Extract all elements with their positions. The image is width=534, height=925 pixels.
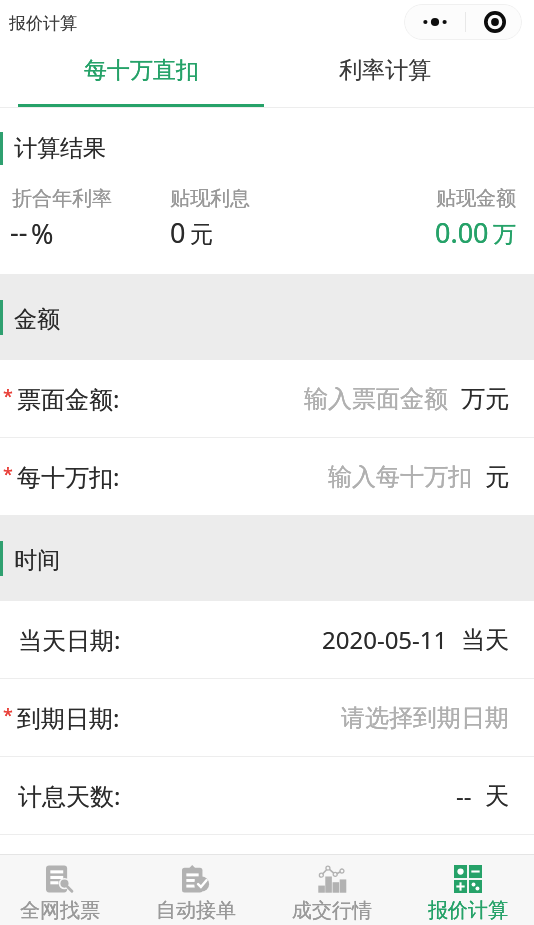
button[interactable]: *: [0, 679, 534, 756]
staticText: 成交行情: [292, 898, 372, 923]
staticText: *: [3, 384, 13, 409]
button[interactable]: 计息天数:: [0, 757, 534, 834]
staticText: %: [31, 215, 54, 252]
staticText: 输入票面金额: [304, 384, 448, 414]
staticText: 当天日期:: [18, 623, 121, 656]
staticText: 元: [485, 462, 509, 492]
staticText: 0: [170, 214, 186, 251]
staticText: *: [3, 703, 13, 728]
staticText: 元: [190, 220, 213, 249]
staticText: 全网找票: [20, 898, 100, 923]
staticText: 0: [170, 214, 186, 251]
staticText: 计算结果: [14, 134, 106, 163]
staticText: 0.00: [435, 214, 489, 251]
staticText: 每十万直扣: [84, 56, 199, 85]
staticText: 万元: [461, 384, 509, 414]
staticText: 输入每十万扣: [328, 462, 472, 492]
staticText: 折合年利率: [12, 186, 112, 211]
staticText: 自动接单: [156, 898, 236, 923]
button[interactable]: 利率计算: [282, 44, 488, 108]
staticText: 当天: [461, 625, 509, 655]
staticText: 2020-05-11: [322, 623, 448, 656]
staticText: 当天: [461, 625, 509, 655]
staticText: 贴现利息: [170, 186, 250, 211]
staticText: 每十万扣:: [17, 460, 120, 493]
staticText: 元: [485, 462, 509, 492]
staticText: 到期日期:: [17, 701, 120, 734]
staticText: 贴现金额: [436, 186, 516, 211]
staticText: 元: [190, 220, 213, 249]
staticText: %: [31, 215, 54, 252]
staticText: 万元: [461, 384, 509, 414]
staticText: 票面金额:: [17, 382, 120, 415]
button[interactable]: 报价计算: [400, 855, 534, 925]
staticText: 输入票面金额: [304, 384, 448, 414]
button[interactable]: 自动接单: [128, 855, 264, 925]
staticText: 报价计算: [9, 13, 77, 34]
staticText: 计息天数:: [18, 779, 121, 812]
staticText: 每十万直扣: [84, 56, 199, 85]
staticText: 利率计算: [339, 56, 431, 85]
button[interactable]: *: [0, 438, 534, 515]
button[interactable]: 当天日期:: [0, 601, 534, 678]
staticText: --: [456, 779, 472, 812]
staticText: 每十万扣:: [17, 460, 120, 493]
staticText: 自动接单: [156, 898, 236, 923]
staticText: 当天日期:: [18, 623, 121, 656]
staticText: *: [3, 703, 13, 728]
staticText: 万: [493, 220, 516, 249]
staticText: 利率计算: [339, 56, 431, 85]
staticText: 金额: [14, 305, 60, 334]
staticText: 票面金额:: [17, 382, 120, 415]
button[interactable]: *: [0, 360, 534, 437]
staticText: 计算结果: [14, 134, 106, 163]
staticText: 报价计算: [428, 898, 508, 923]
staticText: 到期日期:: [17, 701, 120, 734]
staticText: 请选择到期日期: [341, 703, 509, 733]
staticText: 贴现利息: [170, 186, 250, 211]
staticText: 计息天数:: [18, 779, 121, 812]
button[interactable]: 成交行情: [264, 855, 400, 925]
staticText: 全网找票: [20, 898, 100, 923]
staticText: --: [456, 779, 472, 812]
staticText: --: [10, 213, 28, 250]
staticText: 贴现金额: [436, 186, 516, 211]
staticText: *: [3, 462, 13, 487]
button[interactable]: More options: [404, 4, 465, 40]
staticText: 输入每十万扣: [328, 462, 472, 492]
staticText: 万: [493, 220, 516, 249]
staticText: 天: [485, 781, 509, 811]
staticText: 报价计算: [9, 13, 77, 34]
staticText: 2020-05-11: [322, 623, 448, 656]
staticText: *: [3, 384, 13, 409]
staticText: 天: [485, 781, 509, 811]
staticText: 金额: [14, 305, 60, 334]
button[interactable]: 全网找票: [0, 855, 128, 925]
staticText: 时间: [14, 546, 60, 575]
staticText: 报价计算: [428, 898, 508, 923]
staticText: 时间: [14, 546, 60, 575]
staticText: *: [3, 462, 13, 487]
staticText: 0.00: [435, 214, 489, 251]
button[interactable]: Close mini program: [466, 4, 522, 40]
staticText: --: [10, 213, 28, 250]
button[interactable]: 每十万直扣: [0, 44, 282, 108]
staticText: 请选择到期日期: [341, 703, 509, 733]
staticText: 折合年利率: [12, 186, 112, 211]
staticText: 成交行情: [292, 898, 372, 923]
